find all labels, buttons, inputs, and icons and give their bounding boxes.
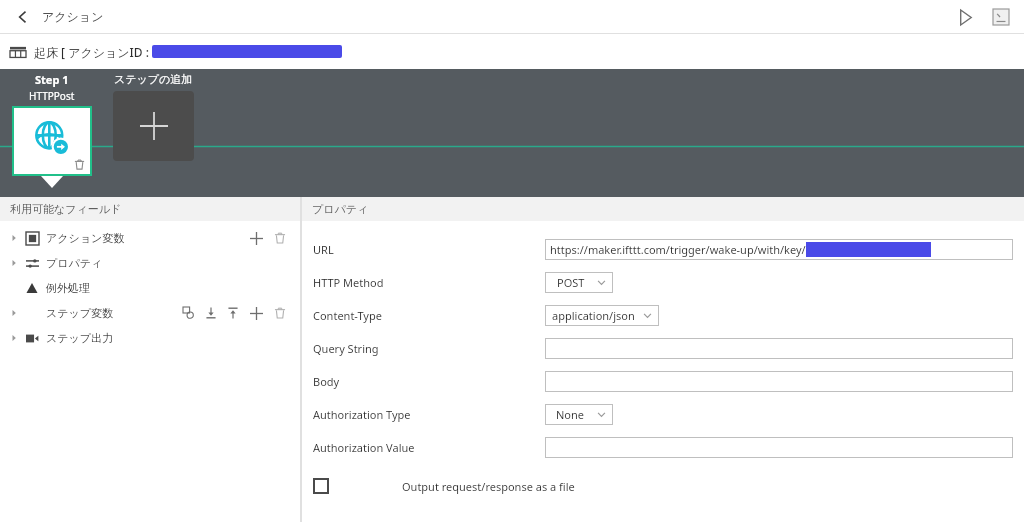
staticText: アクション変数 bbox=[46, 231, 125, 245]
staticText: Authorization Type bbox=[313, 407, 411, 422]
staticText: None bbox=[556, 407, 585, 422]
staticText: Body bbox=[313, 374, 340, 389]
staticText: アクション bbox=[42, 9, 104, 24]
staticText: application/json bbox=[552, 308, 635, 323]
staticText: Step 1 bbox=[35, 72, 69, 87]
staticText: ステップ出力 bbox=[46, 331, 114, 345]
staticText: 例外処理 bbox=[46, 281, 90, 295]
button[interactable]: Add bbox=[244, 301, 268, 325]
staticText: 利用可能なフィールド bbox=[10, 202, 122, 216]
button[interactable]: Text field bbox=[545, 338, 1013, 359]
button[interactable]: 例外処理 bbox=[0, 275, 300, 300]
button[interactable]: None bbox=[545, 404, 613, 425]
staticText: 起床 [ アクションID : bbox=[34, 44, 150, 60]
button[interactable]: Run bbox=[950, 2, 980, 32]
staticText: プロパティ bbox=[312, 202, 369, 216]
button[interactable]: ステップ出力 bbox=[0, 325, 300, 350]
staticText: Content-Type bbox=[313, 308, 382, 323]
staticText: POST bbox=[557, 275, 585, 290]
staticText: ステップの追加 bbox=[114, 72, 193, 86]
staticText: Authorization Value bbox=[313, 440, 415, 455]
button[interactable]: Copy bbox=[178, 302, 200, 324]
staticText: HTTP Method bbox=[313, 275, 384, 290]
button[interactable]: Back bbox=[10, 4, 36, 30]
button[interactable]: Add bbox=[244, 226, 268, 250]
button[interactable]: Delete bbox=[268, 301, 292, 325]
staticText: https://maker.ifttt.com/trigger/wake-up/… bbox=[550, 242, 806, 257]
staticText: HTTPPost bbox=[29, 89, 75, 103]
button[interactable]: Export bbox=[222, 302, 244, 324]
button[interactable]: ステップ変数 bbox=[0, 300, 300, 325]
staticText: プロパティ bbox=[46, 256, 103, 270]
button[interactable]: POST bbox=[545, 272, 613, 293]
button[interactable]: Text field bbox=[545, 371, 1013, 392]
button[interactable]: Console bbox=[986, 2, 1016, 32]
button[interactable]: Output request/response as a file bbox=[302, 473, 1024, 499]
staticText: ステップ変数 bbox=[46, 306, 114, 320]
button[interactable]: Import bbox=[200, 302, 222, 324]
button[interactable]: アクション変数 bbox=[0, 225, 300, 250]
button[interactable]: application/json bbox=[545, 305, 659, 326]
staticText: URL bbox=[313, 242, 334, 257]
button[interactable]: Step 1 HTTPPost bbox=[12, 106, 92, 176]
button[interactable]: https://maker.ifttt.com/trigger/wake-up/… bbox=[545, 239, 1013, 260]
staticText: Output request/response as a file bbox=[402, 479, 575, 494]
button[interactable]: Text field bbox=[545, 437, 1013, 458]
button[interactable]: Delete bbox=[268, 226, 292, 250]
button[interactable]: プロパティ bbox=[0, 250, 300, 275]
button[interactable]: Add step bbox=[113, 91, 194, 161]
staticText: Query String bbox=[313, 341, 379, 356]
